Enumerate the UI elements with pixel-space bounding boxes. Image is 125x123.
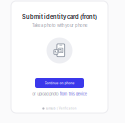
staticText: Verification xyxy=(59,107,77,110)
staticText: or upload photo xyxy=(32,92,58,96)
button[interactable]: or upload photo xyxy=(32,92,87,96)
staticText: Continue on phone xyxy=(44,81,74,85)
staticText: Take a photo with your phone xyxy=(32,23,87,28)
staticText: Submit identity card (front) xyxy=(22,13,97,20)
staticText: sumsub xyxy=(46,107,56,110)
button[interactable]: Continue on phone xyxy=(35,78,84,88)
staticText: from this device xyxy=(60,92,87,96)
